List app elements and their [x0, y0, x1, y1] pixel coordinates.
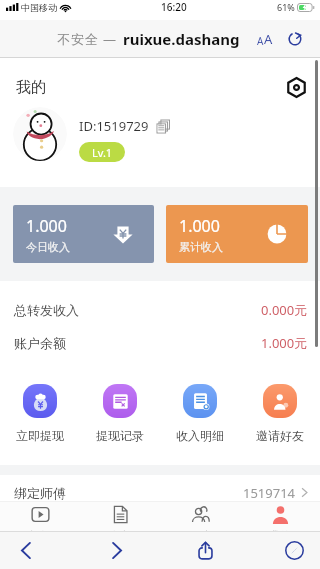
- staticText: 文章: [110, 529, 130, 542]
- button[interactable]: 我的: [240, 501, 320, 545]
- button[interactable]: 邀请好友: [240, 384, 320, 443]
- button[interactable]: Text size: [255, 30, 275, 48]
- button[interactable]: 立即提现: [0, 384, 80, 443]
- button[interactable]: 团队: [160, 501, 240, 545]
- staticText: 立即提现: [16, 428, 64, 443]
- staticText: 16:20: [161, 0, 187, 14]
- button[interactable]: 总转发收入: [0, 293, 320, 326]
- staticText: A: [257, 34, 264, 48]
- staticText: 中国移动: [21, 2, 57, 13]
- button[interactable]: 1.000: [13, 205, 154, 263]
- button[interactable]: Lv.1: [79, 142, 125, 162]
- button[interactable]: 视频: [0, 501, 80, 545]
- staticText: 1.000: [26, 215, 67, 237]
- staticText: A: [264, 30, 273, 48]
- staticText: 总转发收入: [14, 302, 79, 318]
- button[interactable]: 绑定师傅: [0, 475, 320, 510]
- staticText: ruixue.dashang: [123, 29, 240, 49]
- staticText: 账户余额: [14, 335, 66, 351]
- staticText: Lv.1: [92, 145, 113, 160]
- button[interactable]: Reload: [284, 28, 306, 50]
- staticText: 累计收入: [179, 240, 223, 254]
- staticText: 收入明细: [176, 428, 224, 443]
- staticText: 今日收入: [26, 240, 70, 254]
- button[interactable]: 1.000: [166, 205, 308, 263]
- staticText: 不安全 —: [57, 30, 117, 48]
- staticText: 0.000元: [261, 301, 308, 319]
- button[interactable]: 文章: [80, 501, 160, 545]
- button[interactable]: 收入明细: [160, 384, 240, 443]
- button[interactable]: Back: [6, 531, 46, 569]
- staticText: 1.000: [179, 215, 220, 237]
- staticText: 我的: [270, 529, 290, 542]
- staticText: 我的: [16, 78, 46, 97]
- staticText: 1519714: [243, 484, 296, 502]
- staticText: 1.000元: [261, 334, 308, 352]
- staticText: 绑定师傅: [14, 485, 66, 501]
- button[interactable]: Forward: [96, 531, 136, 569]
- staticText: 61%: [277, 1, 295, 13]
- staticText: 视频: [30, 529, 50, 542]
- staticText: 提现记录: [96, 428, 144, 443]
- button[interactable]: 账户余额: [0, 326, 320, 359]
- staticText: ID:1519729: [79, 117, 149, 135]
- staticText: 邀请好友: [256, 428, 304, 443]
- button[interactable]: Settings: [284, 75, 308, 99]
- button[interactable]: 提现记录: [80, 384, 160, 443]
- button[interactable]: Bookmarks: [274, 531, 314, 569]
- button[interactable]: Copy ID: [155, 118, 171, 134]
- staticText: 团队: [190, 529, 210, 542]
- button[interactable]: Share: [185, 531, 225, 569]
